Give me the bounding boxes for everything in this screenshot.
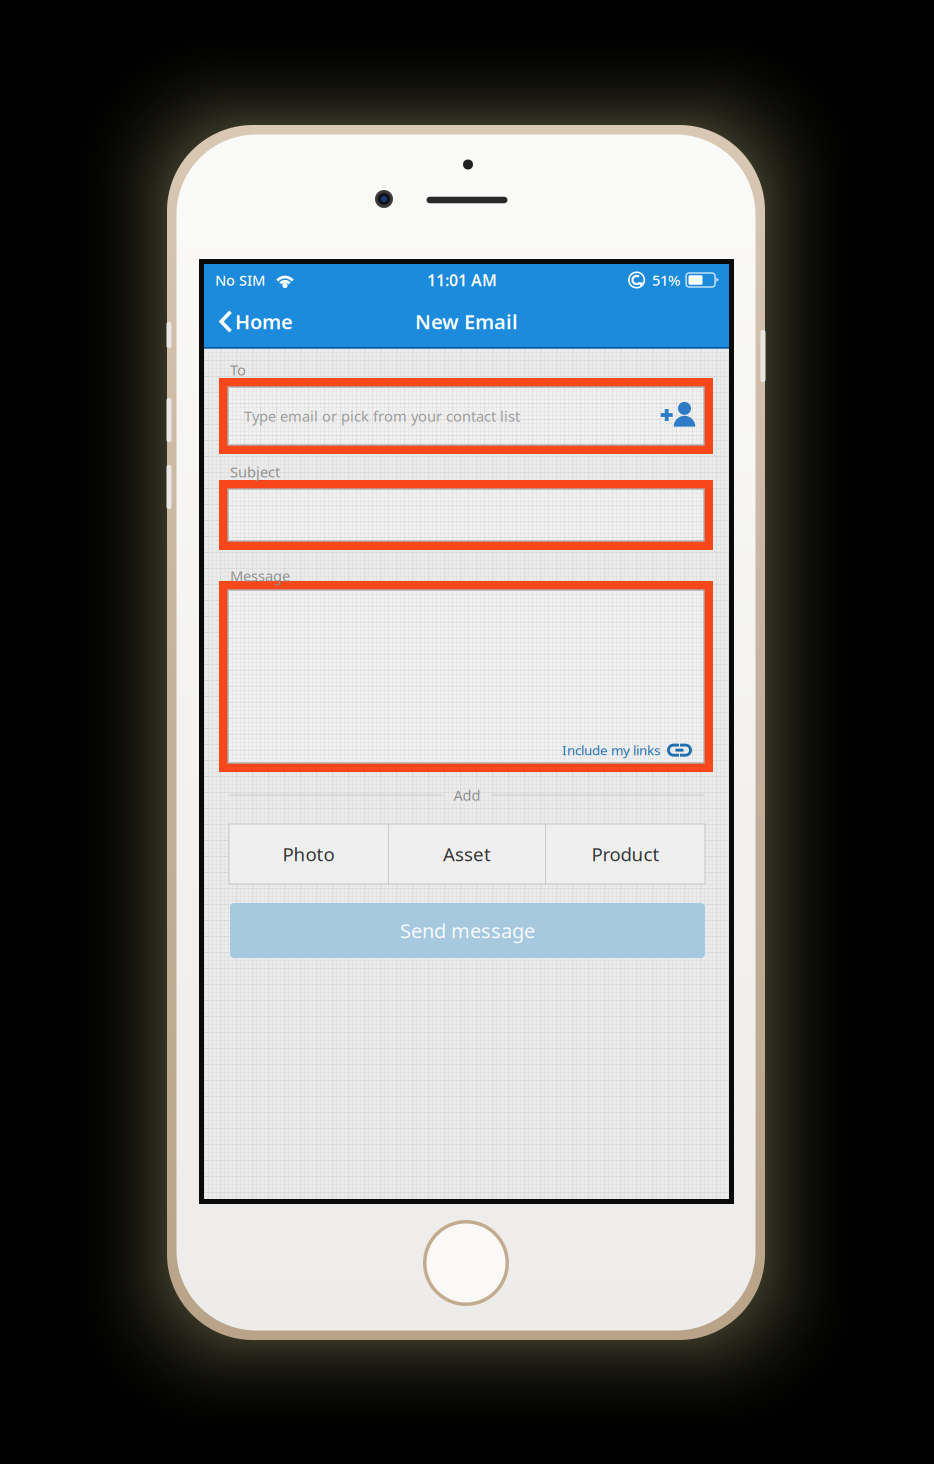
button[interactable]: Product	[546, 824, 705, 884]
staticText: 11:01 AM	[427, 269, 497, 291]
button[interactable]: Home	[204, 302, 303, 341]
staticText: New Email	[415, 308, 518, 335]
button[interactable]: Send message	[230, 903, 705, 958]
staticText: Subject	[230, 462, 280, 481]
staticText: Home	[235, 308, 293, 335]
staticText: Send message	[400, 917, 535, 944]
staticText: Asset	[443, 842, 491, 866]
staticText: Type email or pick from your contact lis…	[244, 406, 520, 426]
staticText: Include my links	[562, 741, 660, 759]
staticText: No SIM	[215, 270, 265, 290]
staticText: Photo	[282, 842, 334, 866]
staticText: Add	[453, 785, 480, 805]
button[interactable]: Photo	[229, 824, 388, 884]
button[interactable]: Include my links	[562, 741, 692, 759]
staticText: Product	[591, 842, 659, 866]
staticText: 51%	[652, 270, 680, 290]
button[interactable]: Asset	[389, 824, 545, 884]
staticText: Message	[230, 566, 290, 585]
staticText: To	[230, 360, 246, 379]
